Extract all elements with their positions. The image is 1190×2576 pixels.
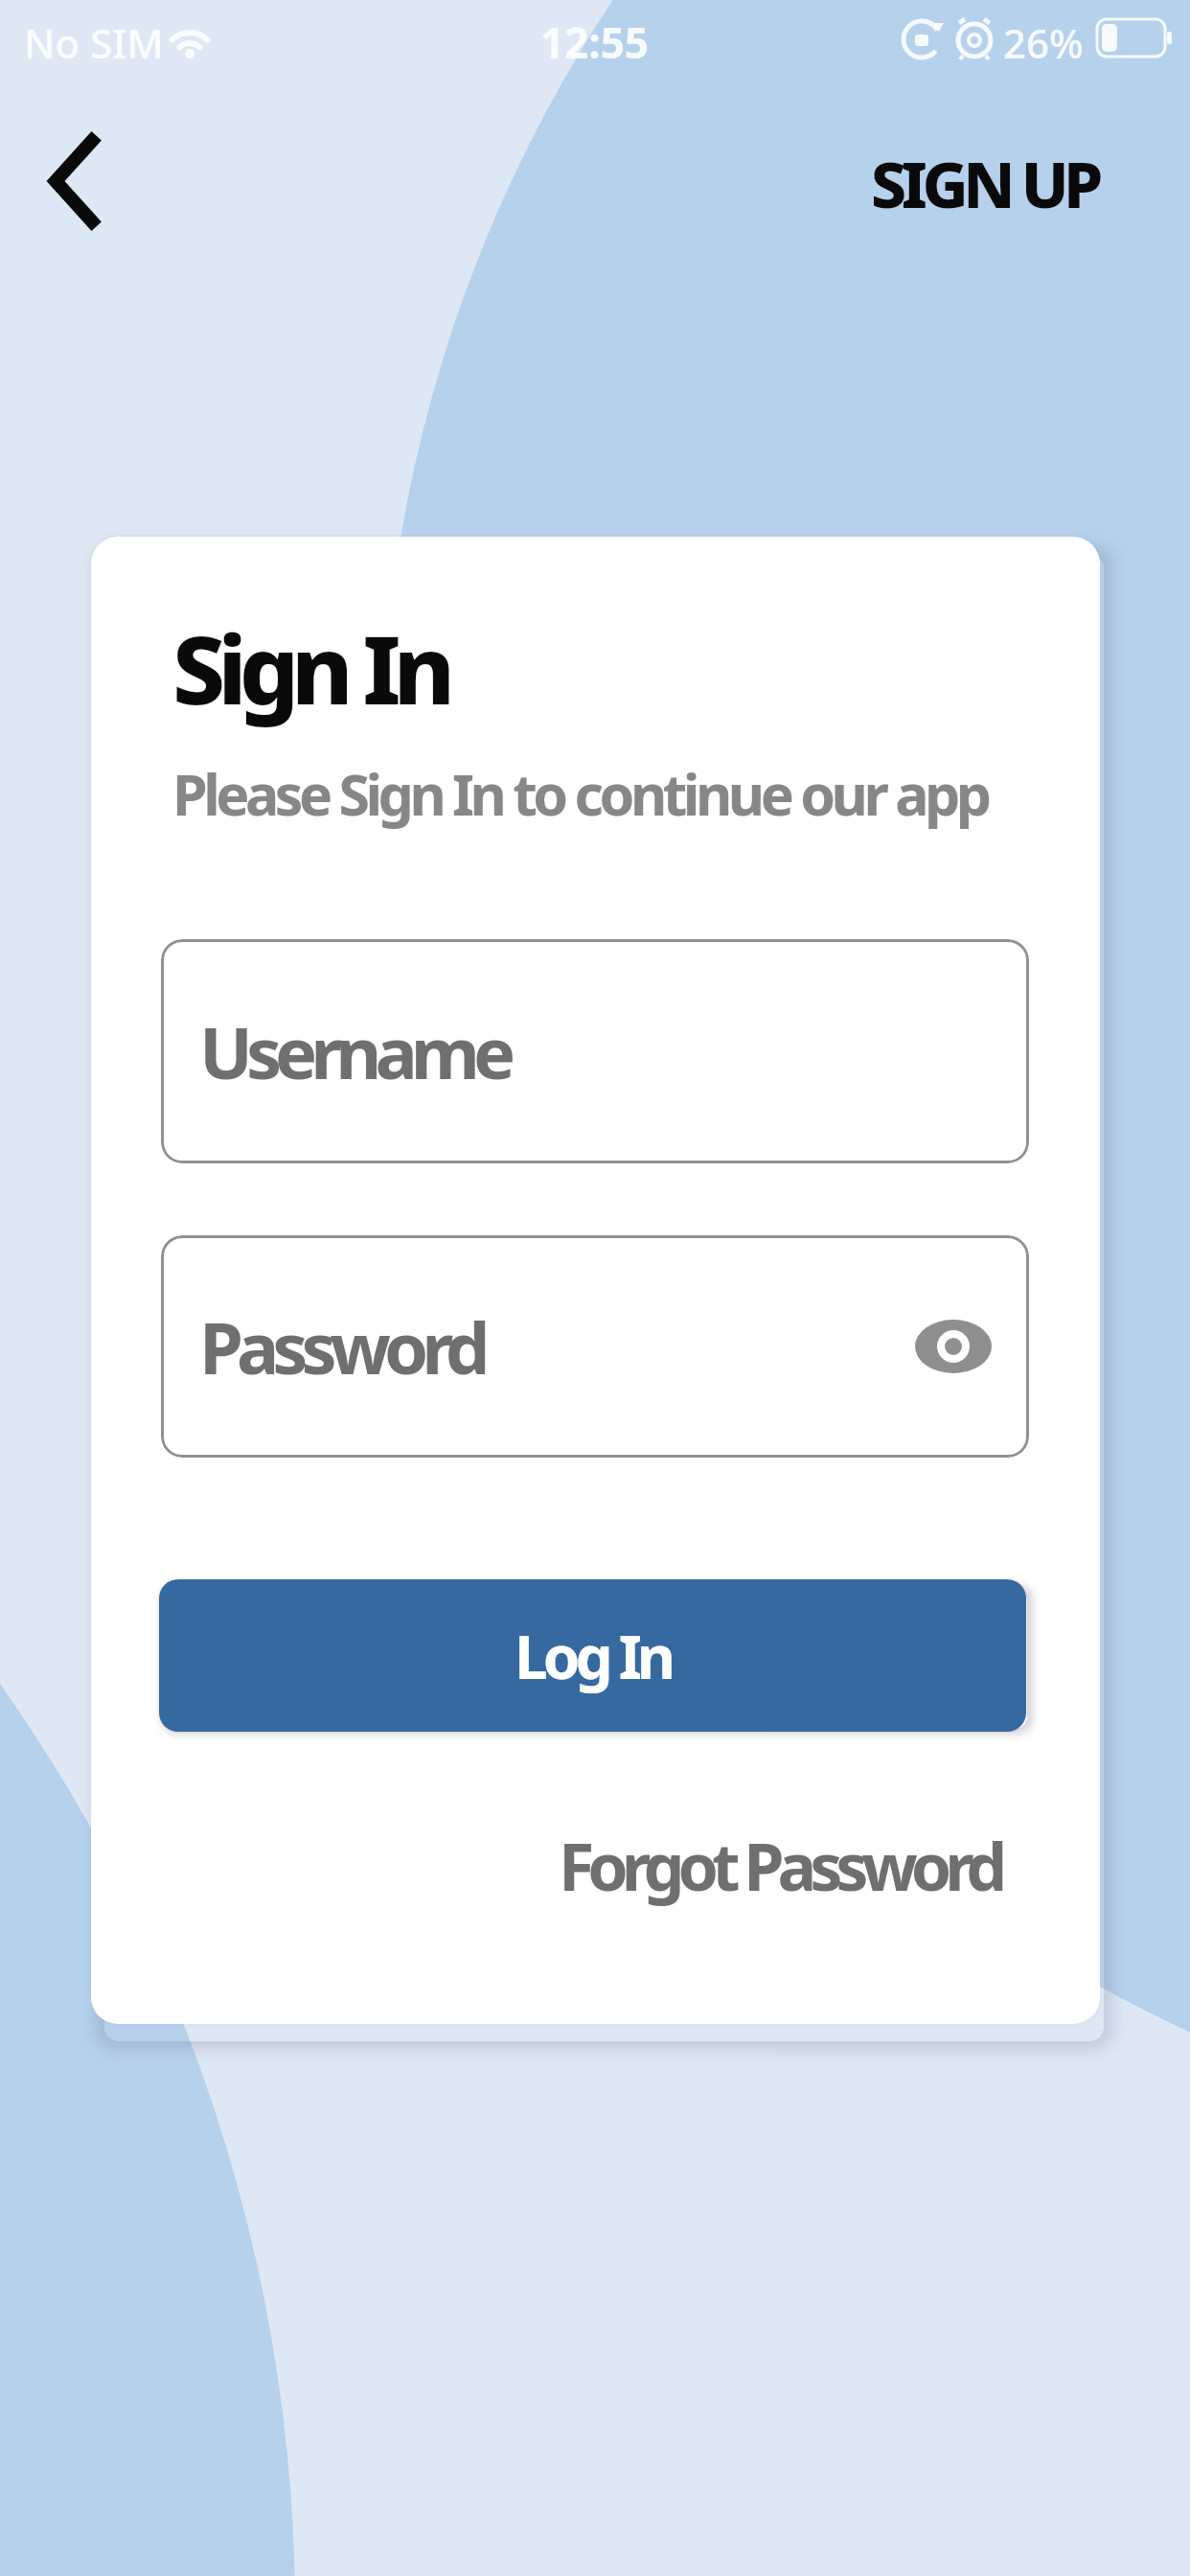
staticText: Log In xyxy=(515,1616,672,1696)
button[interactable]: Password xyxy=(161,1235,1029,1458)
staticText: Password xyxy=(199,1299,484,1395)
staticText: Please Sign In to continue our app xyxy=(172,755,988,832)
button[interactable]: Username xyxy=(161,939,1029,1163)
staticText: No SIM xyxy=(24,15,164,70)
staticText: 12:55 xyxy=(540,13,650,71)
button[interactable]: Forgot Password xyxy=(559,1821,1001,1910)
button[interactable]: Log In xyxy=(159,1579,1026,1732)
button[interactable] xyxy=(33,121,115,241)
button[interactable] xyxy=(912,1305,995,1388)
button[interactable]: SIGN UP xyxy=(871,140,1098,226)
staticText: Sign In xyxy=(172,604,448,731)
staticText: 26% xyxy=(1003,15,1084,70)
staticText: Username xyxy=(199,1003,510,1100)
